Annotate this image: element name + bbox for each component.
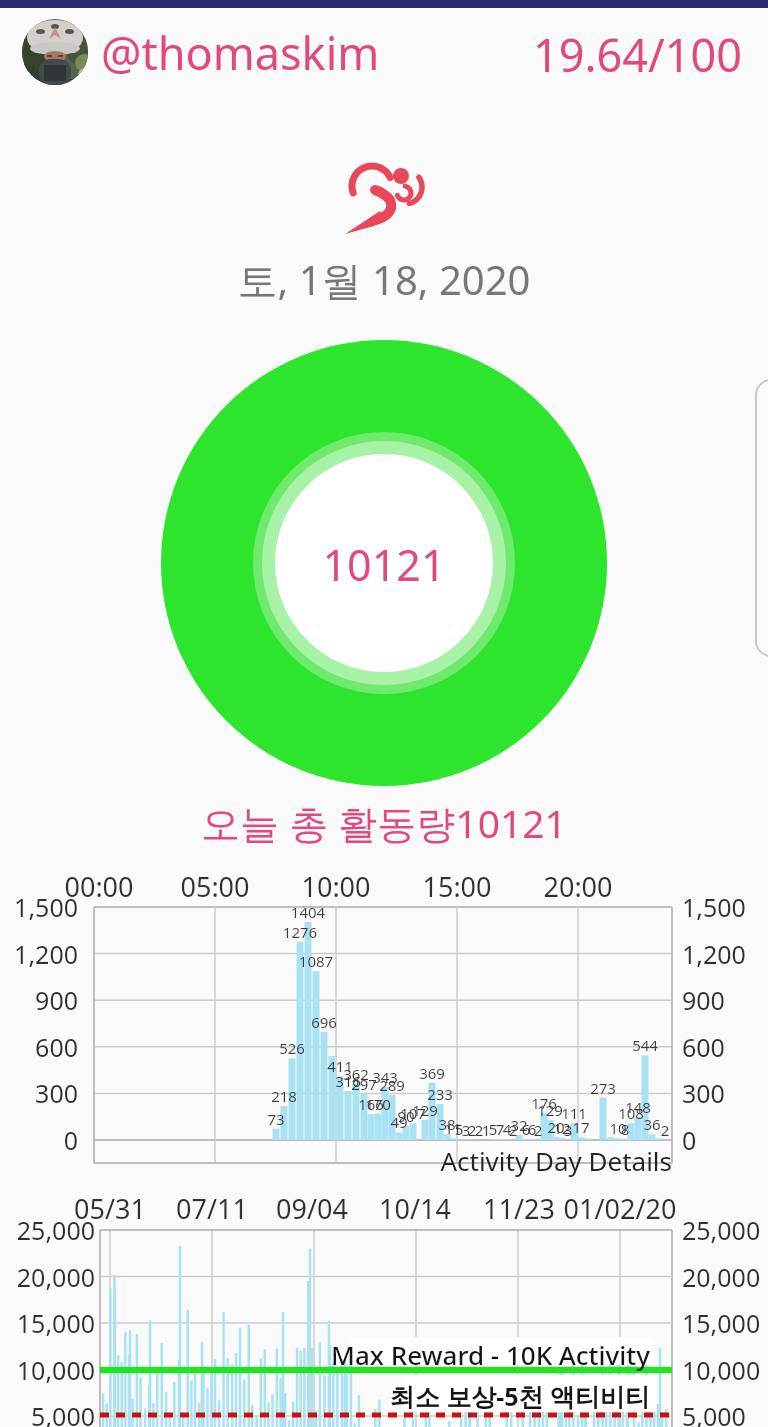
staticText: 7: [470, 1119, 530, 1139]
staticText: 11: [423, 1118, 483, 1138]
staticText: 5: [463, 1119, 523, 1139]
staticText: 316: [318, 1071, 378, 1091]
staticText: 369: [402, 1063, 462, 1083]
staticText: 1276: [270, 922, 330, 942]
staticText: 3: [538, 1120, 598, 1140]
staticText: 6: [496, 1119, 556, 1139]
staticText: 20:00: [518, 868, 638, 905]
staticText: 411: [310, 1056, 370, 1076]
staticText: 10/14: [345, 1190, 485, 1227]
staticText: 900: [682, 983, 768, 1017]
staticText: 32: [489, 1115, 549, 1135]
staticText: 05:00: [155, 868, 275, 905]
staticText: 5: [429, 1119, 489, 1139]
staticText: 233: [410, 1084, 470, 1104]
staticText: 273: [573, 1078, 633, 1098]
staticText: 362: [326, 1064, 386, 1084]
staticText: 10,000: [682, 1353, 768, 1387]
staticText: 토, 1월 18, 2020: [0, 252, 768, 307]
staticText: 1087: [286, 951, 346, 971]
staticText: 90: [376, 1106, 436, 1126]
staticText: 1,200: [0, 937, 78, 971]
staticText: 10: [588, 1118, 648, 1138]
staticText: 00:00: [39, 868, 159, 905]
staticText: 107: [383, 1103, 443, 1123]
staticText: Max Reward - 10K Activity: [0, 1337, 650, 1372]
button[interactable]: @thomaskim: [101, 22, 380, 83]
staticText: 526: [262, 1038, 322, 1058]
staticText: 2: [449, 1120, 509, 1140]
staticText: 2: [483, 1120, 543, 1140]
staticText: 3: [436, 1120, 496, 1140]
staticText: 1,200: [682, 937, 768, 971]
staticText: 300: [682, 1076, 768, 1110]
staticText: 12: [532, 1118, 592, 1138]
staticText: 111: [544, 1103, 604, 1123]
staticText: 25,000: [682, 1213, 768, 1247]
staticText: 176: [514, 1093, 574, 1113]
staticText: 1: [456, 1120, 516, 1140]
staticText: 600: [682, 1030, 768, 1064]
staticText: 170: [348, 1094, 408, 1114]
staticText: 297: [334, 1074, 394, 1094]
staticText: 343: [355, 1067, 415, 1087]
staticText: 49: [369, 1112, 429, 1132]
staticText: 05/31: [40, 1190, 180, 1227]
staticText: 11/23: [449, 1190, 589, 1227]
staticText: Activity Day Details: [0, 1143, 672, 1178]
staticText: 09/04: [242, 1190, 382, 1227]
staticText: 108: [601, 1103, 661, 1123]
staticText: 25,000: [0, 1213, 95, 1247]
staticText: 148: [608, 1097, 668, 1117]
staticText: 2: [635, 1120, 695, 1140]
staticText: 5,000: [0, 1399, 95, 1427]
staticText: 07/11: [142, 1190, 282, 1227]
staticText: 129: [520, 1100, 580, 1120]
staticText: 10,000: [0, 1353, 95, 1387]
staticText: 5,000: [682, 1399, 768, 1427]
staticText: 36: [622, 1114, 682, 1134]
staticText: 600: [0, 1030, 78, 1064]
staticText: 129: [395, 1100, 455, 1120]
staticText: 15,000: [0, 1306, 95, 1340]
staticText: 900: [0, 983, 78, 1017]
staticText: 166: [341, 1094, 401, 1114]
staticText: 300: [0, 1076, 78, 1110]
staticText: 20: [526, 1117, 586, 1137]
staticText: 01/02/20: [550, 1190, 690, 1227]
staticText: 4: [477, 1119, 537, 1139]
staticText: 2: [508, 1120, 568, 1140]
staticText: 2: [442, 1120, 502, 1140]
staticText: 오늘 총 활동량10121: [0, 796, 768, 849]
staticText: 20,000: [0, 1260, 95, 1294]
staticText: 38: [417, 1114, 477, 1134]
staticText: 최소 보상-5천 액티비티: [0, 1379, 650, 1413]
staticText: 0: [682, 1123, 768, 1157]
staticText: 15,000: [682, 1306, 768, 1340]
staticText: 6: [502, 1119, 562, 1139]
staticText: 0: [0, 1123, 78, 1157]
staticText: 696: [294, 1012, 354, 1032]
button[interactable]: [22, 19, 88, 85]
staticText: 1404: [278, 902, 338, 922]
staticText: 10:00: [276, 868, 396, 905]
staticText: 8: [595, 1119, 655, 1139]
staticText: 1,500: [682, 890, 768, 924]
staticText: 1,500: [0, 890, 78, 924]
staticText: 544: [615, 1035, 675, 1055]
staticText: 218: [254, 1086, 314, 1106]
staticText: 17: [551, 1117, 611, 1137]
staticText: 20,000: [682, 1260, 768, 1294]
staticText: 289: [362, 1075, 422, 1095]
staticText: 73: [246, 1109, 306, 1129]
staticText: 15:00: [397, 868, 517, 905]
button[interactable]: 19.64/100: [533, 24, 742, 85]
staticText: 10121: [0, 535, 768, 594]
